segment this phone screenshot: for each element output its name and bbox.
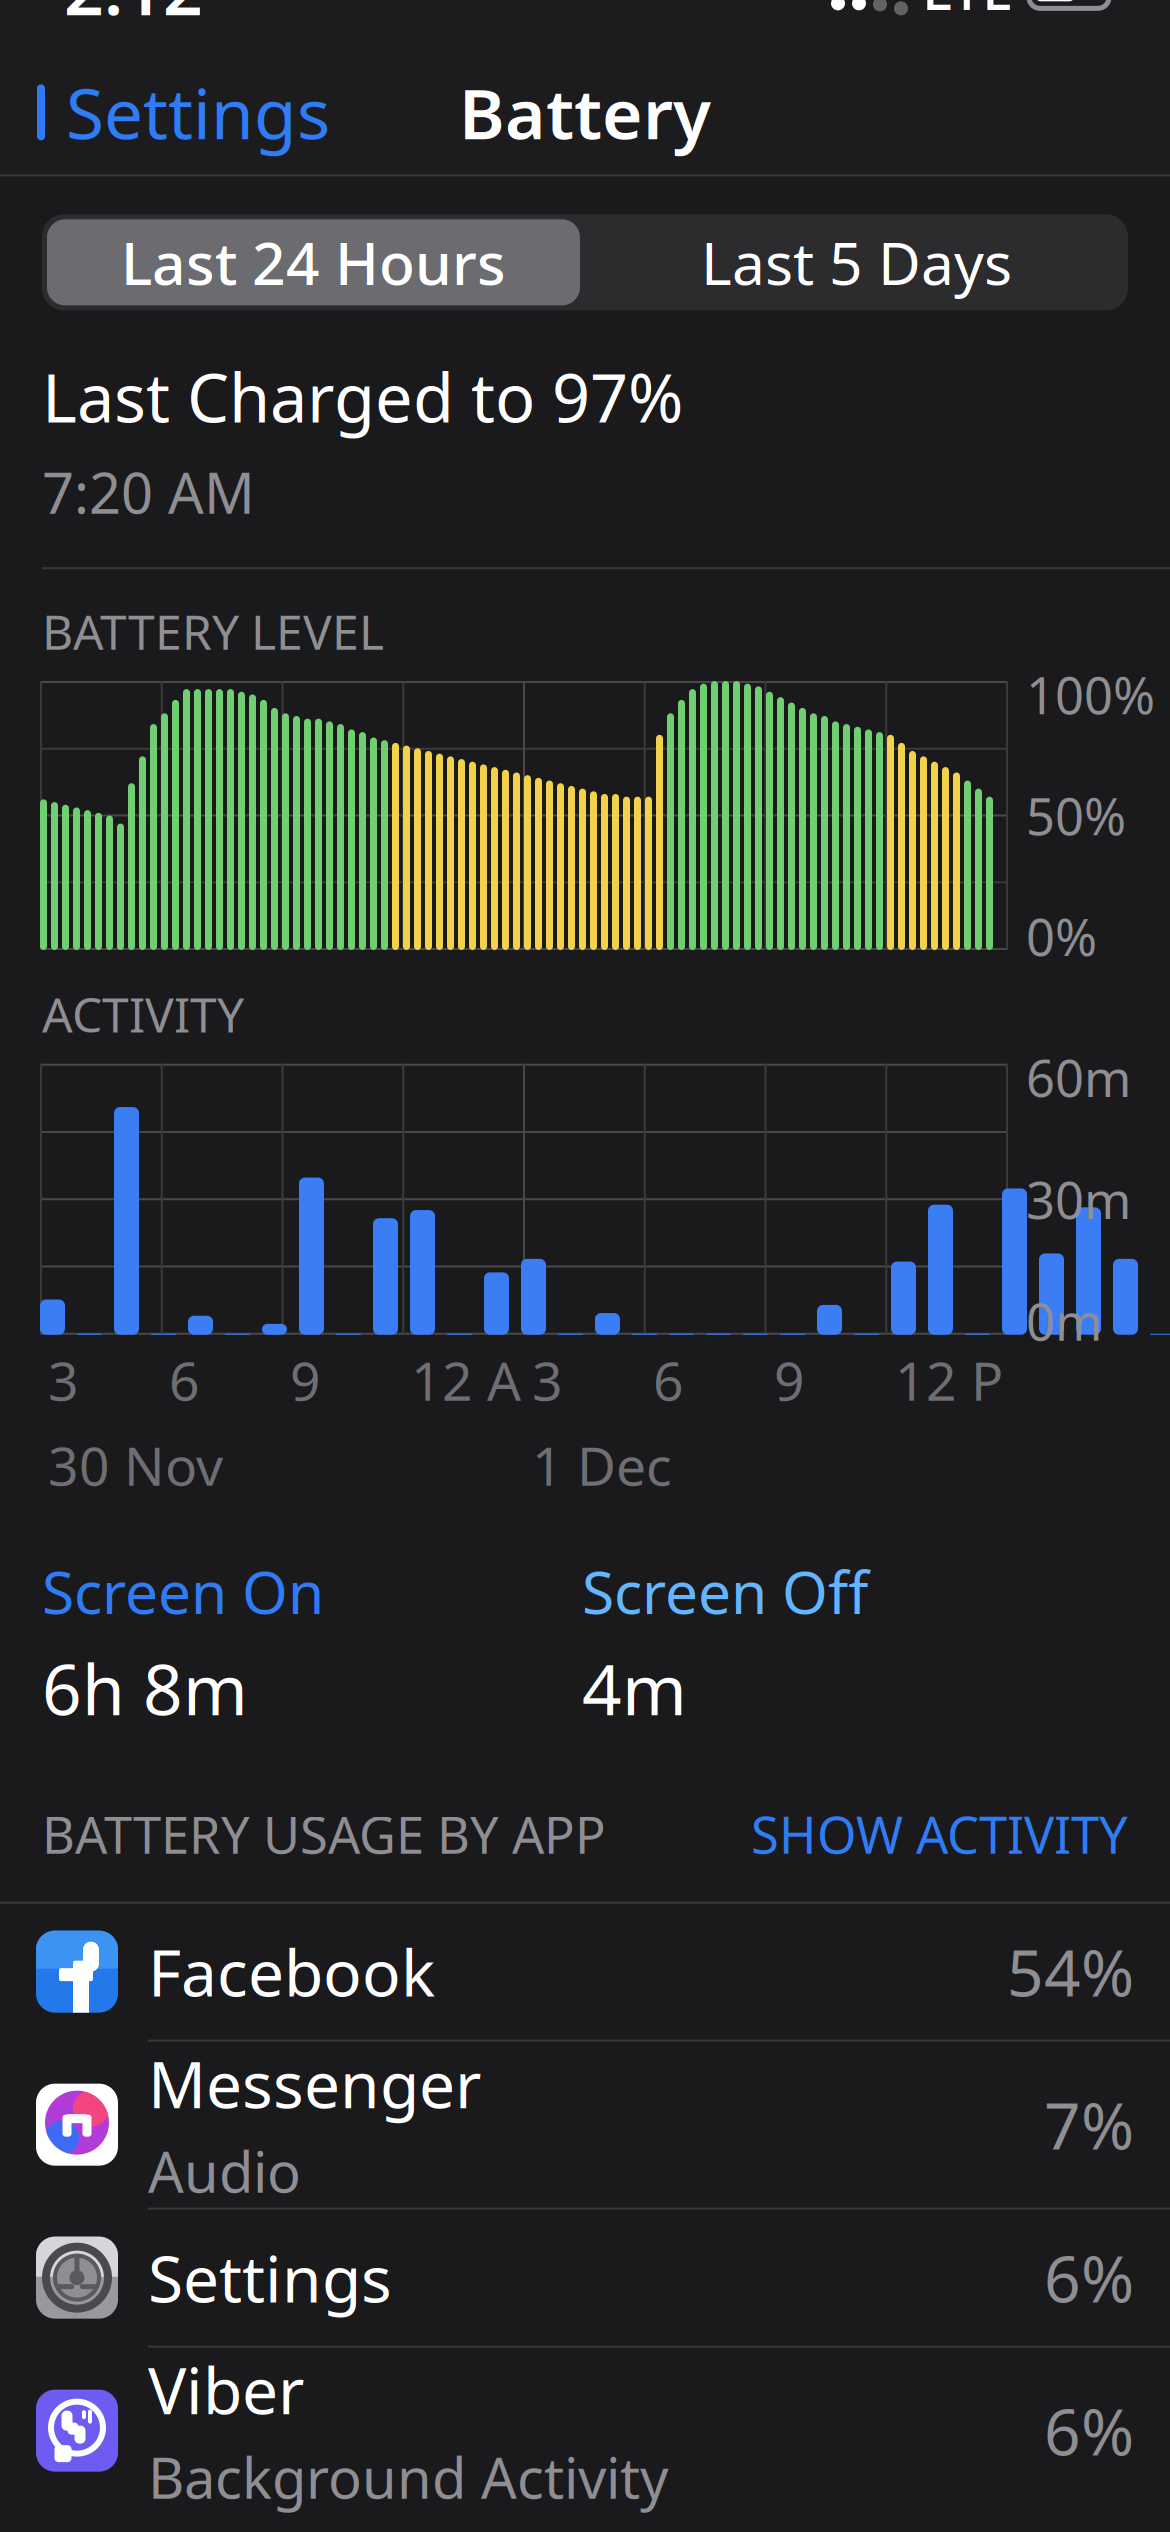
staticText: Settings [66,66,330,158]
staticText: SHOW ACTIVITY [751,1800,1128,1868]
staticText: Last 5 Days [701,223,1012,301]
staticText: 50% [1026,782,1126,849]
staticText: 12 A [411,1345,521,1415]
staticText: Last Charged to 97% [42,352,683,441]
staticText: Settings [148,2235,392,2320]
staticText: Facebook [148,1929,435,2014]
staticText: 2:12 [64,0,203,34]
staticText: ACTIVITY [42,982,244,1046]
staticText: Battery [459,66,711,158]
staticText: Screen Off [582,1552,868,1630]
staticText: 30 Nov [48,1430,223,1500]
staticText: 6% [1044,2388,1134,2473]
staticText: BATTERY USAGE BY APP [42,1800,606,1868]
staticText: 6 [169,1345,200,1415]
staticText: 3 [48,1345,79,1415]
staticText: Messenger [148,2041,481,2126]
staticText: 54% [1007,1929,1134,2014]
staticText: 9 [774,1345,805,1415]
button[interactable]: Last 24 Hours [42,214,585,310]
staticText: 9 [290,1345,321,1415]
staticText: 6 [653,1345,684,1415]
button[interactable]: Facebook [0,1904,1170,2042]
button[interactable]: Messenger [0,2042,1170,2210]
staticText: 4m [582,1642,687,1734]
button[interactable]: Viber [0,2348,1170,2514]
staticText: 12 P [895,1345,1003,1415]
staticText: Audio [148,2134,301,2208]
staticText: 6h 8m [42,1642,248,1734]
staticText: Background Activity [148,2440,669,2514]
staticText: 7% [1044,2082,1134,2167]
staticText: 7:20 AM [42,455,255,529]
staticText: BATTERY LEVEL [42,599,384,663]
staticText: 100% [1026,661,1155,728]
staticText: Viber [148,2347,304,2432]
button[interactable]: Settings [0,2210,1170,2348]
staticText: LTE [922,0,1013,26]
staticText: Last 24 Hours [121,223,506,301]
staticText: 60m [1026,1044,1131,1111]
staticText: 0% [1026,903,1097,970]
button[interactable]: Last 5 Days [585,214,1128,310]
button[interactable]: SHOW ACTIVITY [731,1790,1128,1878]
button[interactable]: Settings [2,48,354,176]
staticText: 0m [1026,1287,1102,1355]
staticText: 30m [1026,1166,1131,1233]
staticText: Screen On [42,1552,324,1630]
staticText: 1 Dec [532,1430,672,1500]
staticText: 6% [1044,2235,1134,2320]
staticText: 3 [532,1345,563,1415]
